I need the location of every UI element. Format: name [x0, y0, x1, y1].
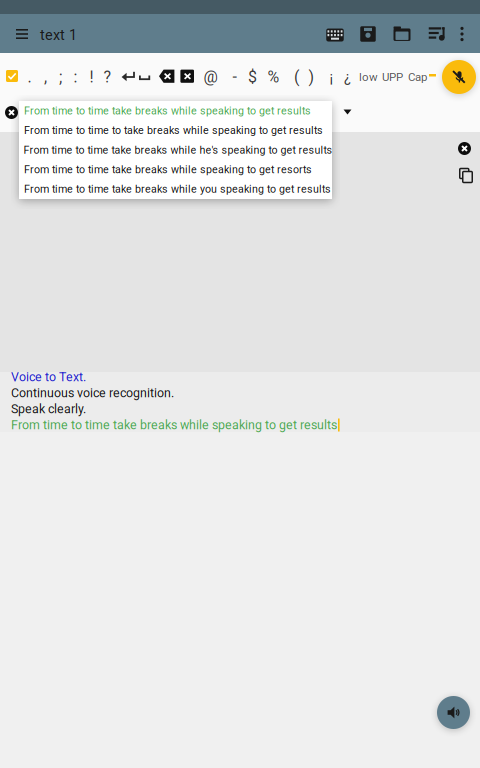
staticText: From time to time take breaks while spea… [24, 104, 311, 117]
button[interactable]: low [359, 65, 378, 89]
button[interactable]: ! [84, 63, 99, 91]
staticText: From time to time to take breaks while s… [24, 124, 323, 137]
staticText: @ [203, 68, 217, 86]
button[interactable]: Dismiss suggestions [5, 106, 18, 119]
button[interactable]: Space [139, 75, 150, 80]
staticText: UPP [382, 70, 403, 84]
button[interactable]: Keyboard [324, 23, 346, 47]
button[interactable]: - [227, 63, 242, 91]
button[interactable]: % [266, 63, 281, 91]
button[interactable]: Playlist [425, 21, 445, 45]
staticText: ( [294, 68, 299, 86]
button[interactable]: New line [121, 71, 135, 83]
button[interactable]: From time to time take breaks while spea… [19, 101, 332, 121]
button[interactable]: ( [289, 63, 304, 91]
button[interactable]: Cap [408, 65, 427, 89]
button[interactable]: . [22, 63, 37, 91]
button[interactable]: UPP [382, 65, 403, 89]
button[interactable]: More options [457, 22, 467, 46]
staticText: Speak clearly. [11, 402, 86, 416]
button[interactable]: ) [304, 63, 319, 91]
staticText: ! [89, 68, 93, 86]
button[interactable]: Backspace [159, 69, 174, 83]
staticText: ¡ [329, 68, 333, 86]
staticText: Voice to Text. [11, 370, 86, 384]
staticText: Cap [408, 70, 427, 84]
button[interactable]: Auto punctuation [5, 64, 19, 88]
button[interactable]: , [38, 63, 53, 91]
staticText: low [359, 70, 378, 84]
staticText: text 1 [40, 27, 77, 43]
staticText: ) [308, 68, 314, 86]
button[interactable]: ? [100, 63, 115, 91]
button[interactable]: From time to time to take breaks while s… [19, 121, 332, 140]
button[interactable]: Open folder [391, 22, 413, 46]
staticText: $ [248, 68, 257, 86]
staticText: Continuous voice recognition. [11, 386, 174, 400]
staticText: ; [59, 68, 62, 86]
button[interactable]: @ [203, 63, 218, 91]
button[interactable]: Speak text [437, 696, 470, 729]
button[interactable]: From time to time take breaks while spea… [19, 160, 332, 179]
staticText: From time to time take breaks while you … [24, 183, 331, 195]
button[interactable]: ¿ [340, 63, 355, 91]
staticText: From time to time take breaks while he's… [23, 144, 332, 156]
button[interactable]: Save [357, 22, 379, 46]
button[interactable]: ¡ [324, 63, 339, 91]
staticText: ? [103, 68, 111, 86]
button[interactable]: $ [245, 63, 260, 91]
button[interactable]: ; [53, 63, 68, 91]
button[interactable]: More suggestions [343, 109, 352, 115]
staticText: : [73, 68, 77, 86]
staticText: , [44, 68, 47, 86]
staticText: - [232, 68, 236, 86]
button[interactable]: Menu [11, 23, 33, 45]
button[interactable]: : [68, 63, 83, 91]
staticText: . [27, 68, 31, 86]
button[interactable]: From time to time take breaks while he's… [19, 140, 332, 160]
button[interactable]: Copy text [458, 167, 471, 181]
button[interactable]: Microphone muted [442, 60, 476, 94]
staticText: % [267, 68, 279, 86]
staticText: From time to time take breaks while spea… [24, 163, 312, 176]
staticText: ¿ [344, 68, 351, 86]
button[interactable]: Delete word [179, 69, 194, 83]
button[interactable]: Clear text [458, 142, 471, 155]
staticText: From time to time take breaks while spea… [11, 418, 337, 432]
button[interactable]: From time to time take breaks while you … [19, 179, 332, 199]
